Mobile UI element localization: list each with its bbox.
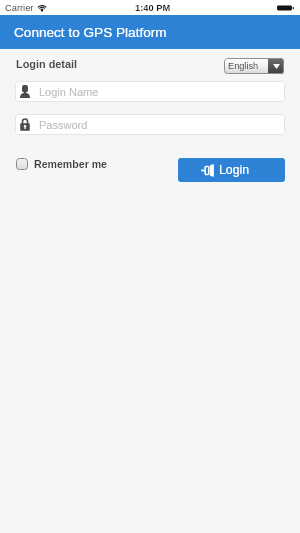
other: User [20,85,30,98]
staticText: English [228,61,259,71]
staticText: Login [219,163,250,177]
button[interactable]: Remember me [16,158,108,170]
button[interactable]: Select language [224,58,284,74]
staticText: Login detail [16,58,78,70]
staticText: Connect to GPS Platform [14,25,167,40]
button[interactable]: Password [15,114,285,135]
staticText: Password [39,119,88,131]
staticText: Remember me [34,158,108,170]
staticText: 1:40 PM [135,3,171,13]
staticText: Carrier [5,3,34,13]
button[interactable]: Login [178,158,285,182]
other: Password [20,118,30,131]
button[interactable]: User [15,81,285,102]
staticText: Login Name [39,86,99,98]
